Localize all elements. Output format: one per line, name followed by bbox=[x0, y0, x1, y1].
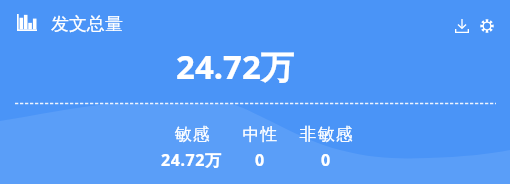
button[interactable]: 发文总量 bbox=[51, 13, 123, 36]
staticText: 中性 bbox=[242, 124, 278, 145]
staticText: 0 bbox=[321, 149, 331, 171]
button[interactable]: 中性 bbox=[242, 124, 278, 171]
button[interactable]: Download bbox=[449, 13, 475, 39]
button[interactable]: 敏感 bbox=[161, 124, 222, 171]
staticText: 敏感 bbox=[174, 124, 210, 145]
staticText: 24.72万 bbox=[161, 149, 222, 171]
staticText: 非敏感 bbox=[299, 124, 353, 145]
staticText: 发文总量 bbox=[51, 13, 123, 36]
button[interactable]: Settings bbox=[474, 13, 500, 39]
staticText: 0 bbox=[255, 149, 265, 171]
button[interactable]: 非敏感 bbox=[299, 124, 353, 171]
staticText: 24.72万 bbox=[176, 44, 294, 89]
button[interactable]: 24.72万 bbox=[176, 44, 294, 89]
